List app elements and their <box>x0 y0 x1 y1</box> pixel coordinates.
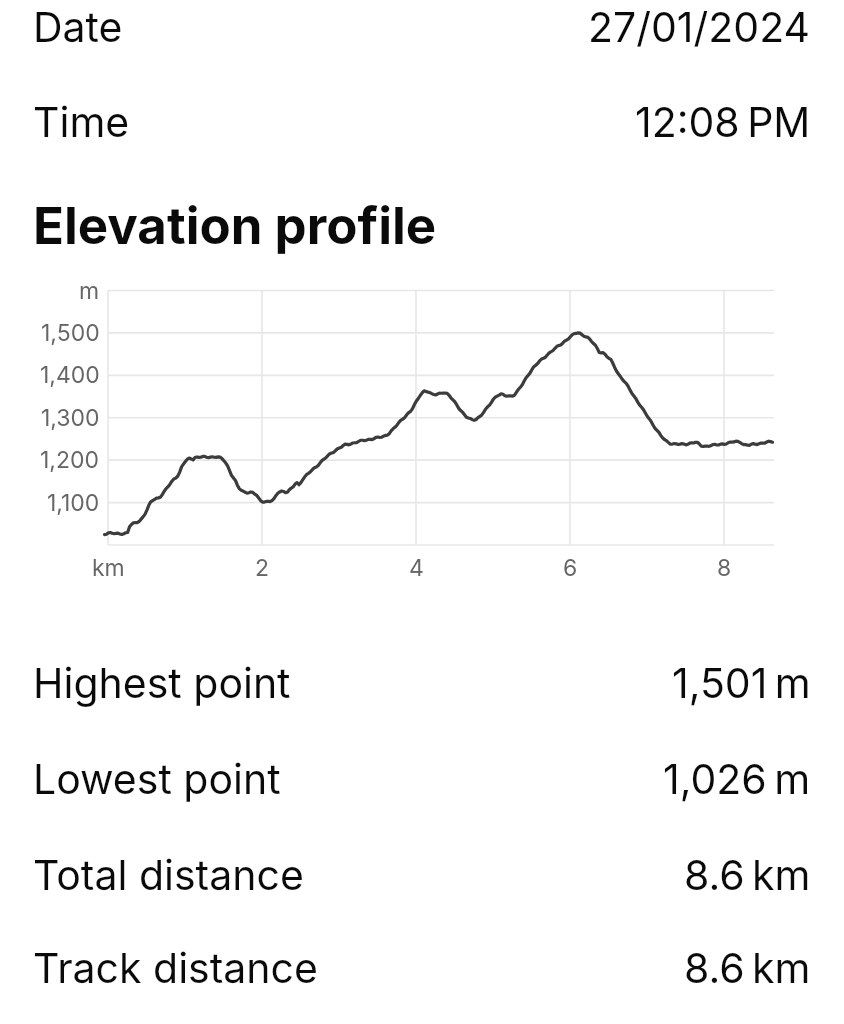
staticText: 1,500 <box>41 319 100 347</box>
staticText: 8.6 km <box>684 850 811 900</box>
staticText: Time <box>33 97 130 147</box>
staticText: Elevation profile <box>33 195 437 257</box>
staticText: 2 <box>255 554 270 582</box>
button[interactable]: Date <box>33 0 811 57</box>
staticText: 1,300 <box>41 404 100 432</box>
button[interactable]: Time <box>33 92 811 152</box>
staticText: Track distance <box>33 943 318 993</box>
button[interactable]: Lowest point <box>33 749 811 809</box>
staticText: Date <box>33 2 123 52</box>
button[interactable]: Track distance <box>33 938 811 998</box>
staticText: m <box>79 277 100 305</box>
staticText: 8.6 km <box>684 943 811 993</box>
staticText: 27/01/2024 <box>588 2 811 52</box>
staticText: 12:08 PM <box>635 97 811 147</box>
staticText: 8 <box>717 554 732 582</box>
button[interactable]: Total distance <box>33 845 811 905</box>
button[interactable]: Highest point <box>33 653 811 713</box>
staticText: Highest point <box>33 658 291 708</box>
staticText: 4 <box>409 554 424 582</box>
staticText: 1,100 <box>47 489 100 517</box>
staticText: 1,026 m <box>663 754 811 804</box>
staticText: Total distance <box>33 850 304 900</box>
staticText: 1,400 <box>40 361 100 389</box>
staticText: 1,501 m <box>672 658 811 708</box>
staticText: 6 <box>563 554 578 582</box>
staticText: km <box>92 554 125 582</box>
staticText: 1,200 <box>40 446 100 474</box>
staticText: Lowest point <box>33 754 281 804</box>
